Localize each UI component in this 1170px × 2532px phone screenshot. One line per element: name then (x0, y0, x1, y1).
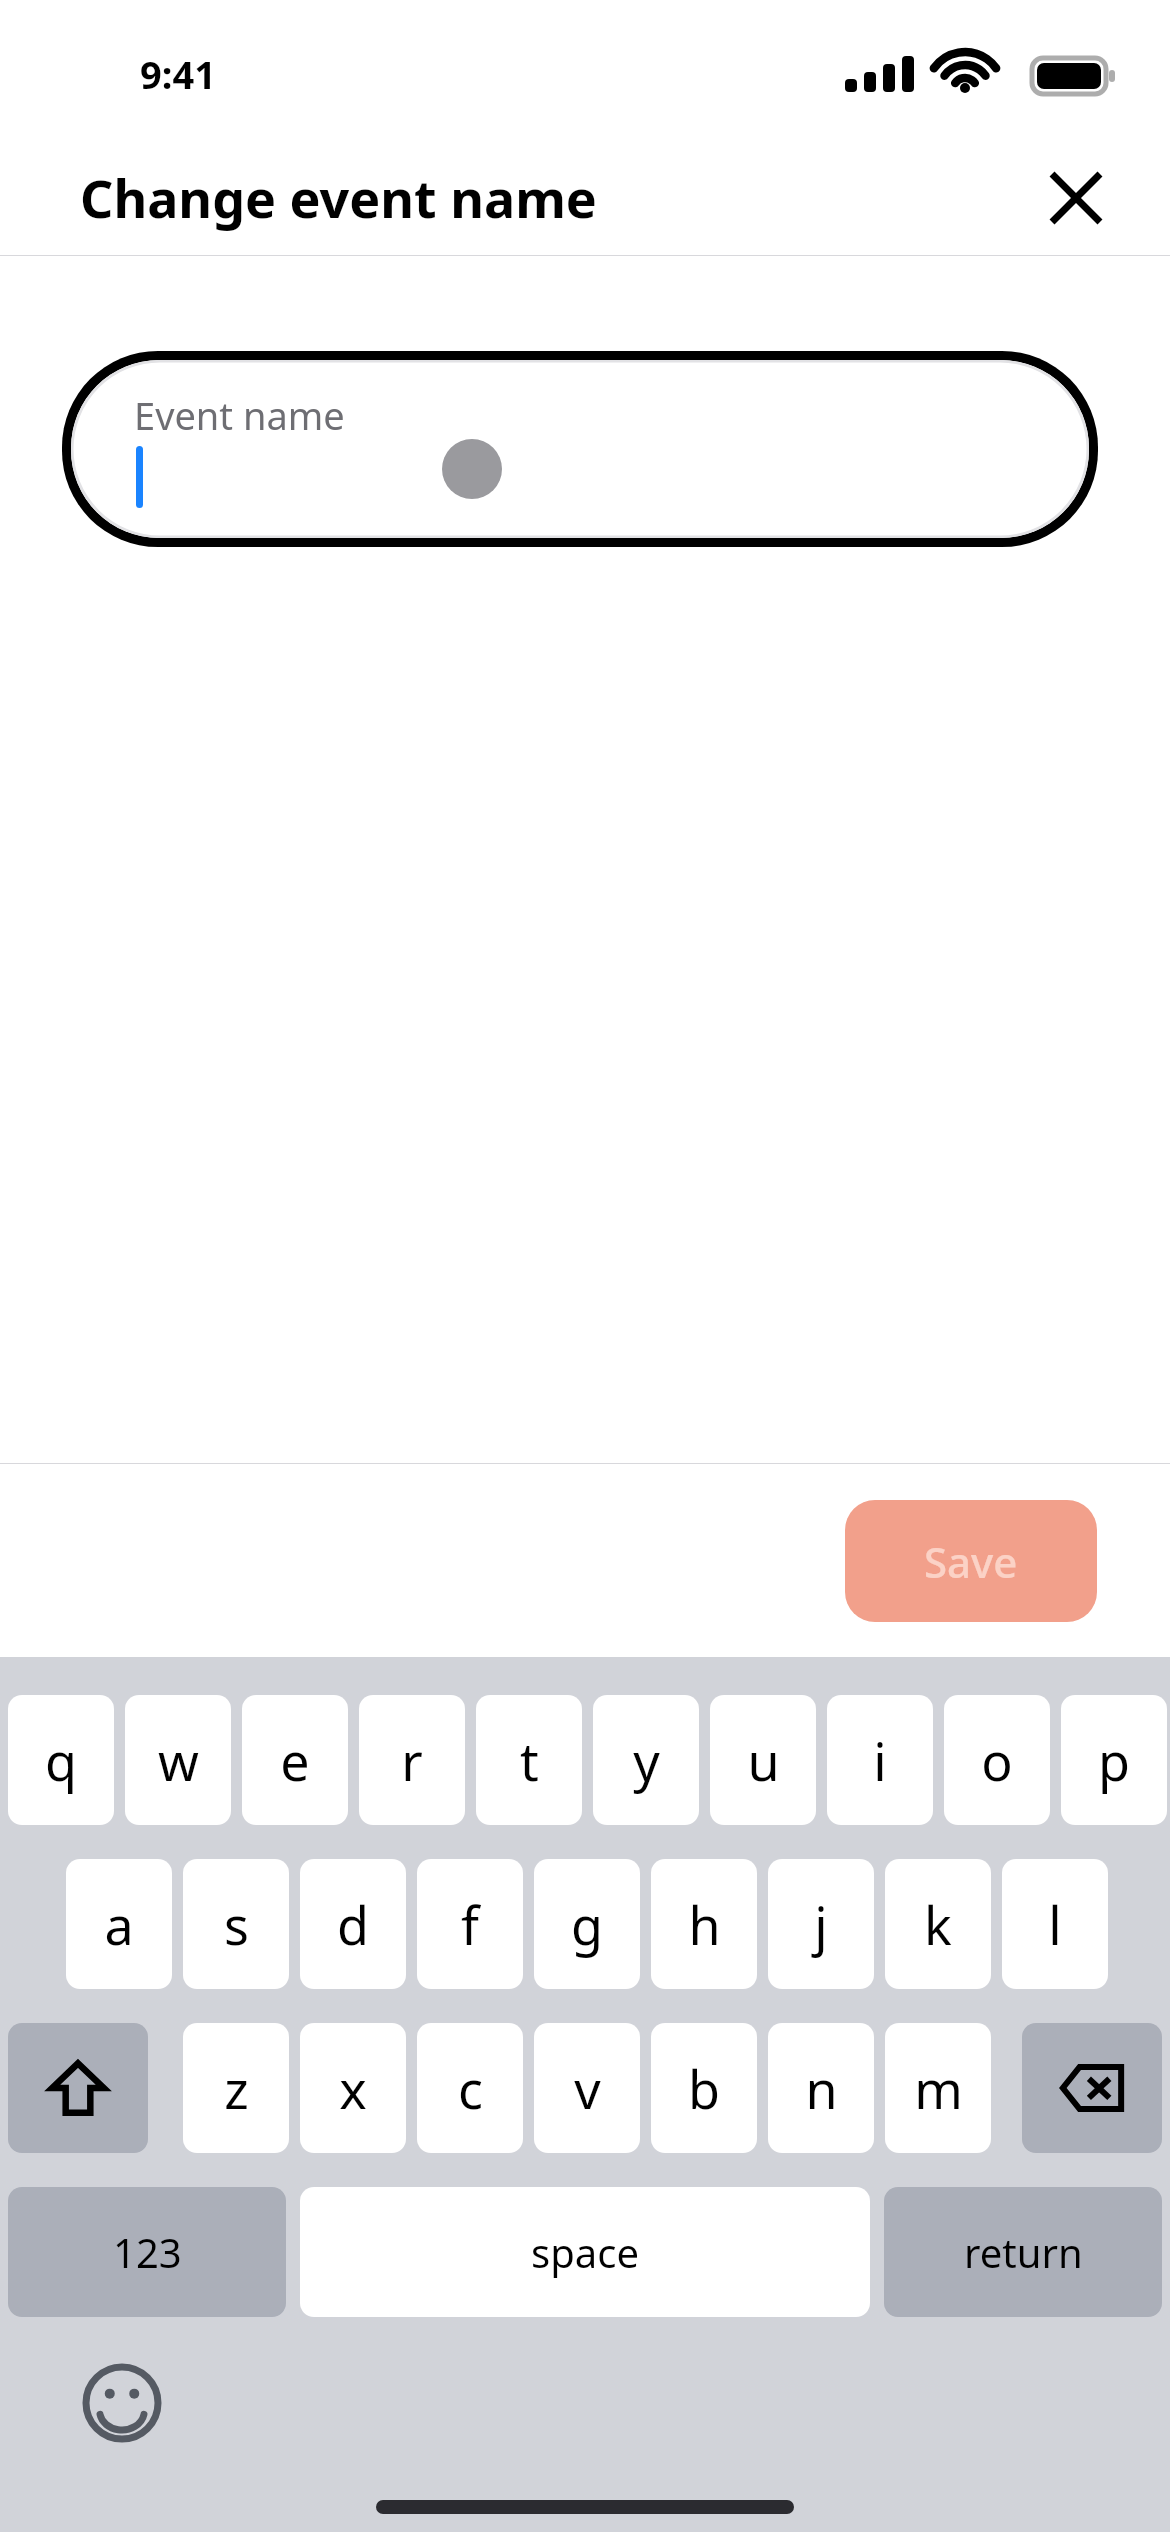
staticText: s (224, 1889, 249, 1960)
button[interactable]: Event name (62, 351, 1098, 547)
staticText: q (45, 1725, 77, 1796)
button[interactable]: d (300, 1859, 406, 1989)
button[interactable]: return (884, 2187, 1162, 2317)
staticText: i (873, 1725, 887, 1796)
button[interactable]: 123 (8, 2187, 286, 2317)
button[interactable]: z (183, 2023, 289, 2153)
button[interactable]: a (66, 1859, 172, 1989)
staticText: z (224, 2053, 249, 2124)
button[interactable]: u (710, 1695, 816, 1825)
staticText: e (280, 1725, 310, 1796)
button[interactable]: h (651, 1859, 757, 1989)
button[interactable]: Close (1037, 159, 1115, 237)
staticText: o (981, 1725, 1013, 1796)
button[interactable]: k (885, 1859, 991, 1989)
staticText: x (339, 2053, 367, 2124)
staticText: g (571, 1889, 603, 1960)
button[interactable]: o (944, 1695, 1050, 1825)
staticText: u (747, 1725, 780, 1796)
button[interactable]: g (534, 1859, 640, 1989)
staticText: r (401, 1725, 423, 1796)
button[interactable]: m (885, 2023, 991, 2153)
button[interactable]: r (359, 1695, 465, 1825)
staticText: v (574, 2053, 601, 2124)
staticText: Save (924, 1533, 1018, 1590)
button[interactable]: w (125, 1695, 231, 1825)
button[interactable]: Save (845, 1500, 1097, 1622)
staticText: b (688, 2053, 720, 2124)
button[interactable] (1022, 2023, 1162, 2153)
staticText: f (461, 1889, 479, 1960)
staticText: a (104, 1889, 134, 1960)
staticText: c (458, 2053, 483, 2124)
button[interactable]: c (417, 2023, 523, 2153)
button[interactable]: f (417, 1859, 523, 1989)
staticText: space (531, 2225, 639, 2279)
button[interactable]: v (534, 2023, 640, 2153)
button[interactable] (8, 2023, 148, 2153)
staticText: k (924, 1889, 952, 1960)
staticText: h (688, 1889, 721, 1960)
staticText: l (1048, 1889, 1062, 1960)
staticText: return (964, 2225, 1083, 2279)
button[interactable]: y (593, 1695, 699, 1825)
staticText: 123 (113, 2225, 182, 2279)
staticText: w (158, 1725, 199, 1796)
staticText: 9:41 (140, 48, 216, 100)
button[interactable]: Emoji (78, 2359, 166, 2447)
button[interactable]: i (827, 1695, 933, 1825)
staticText: j (814, 1889, 828, 1960)
staticText: p (1098, 1725, 1130, 1796)
button[interactable]: l (1002, 1859, 1108, 1989)
button[interactable]: n (768, 2023, 874, 2153)
staticText: m (914, 2053, 963, 2124)
button[interactable]: p (1061, 1695, 1167, 1825)
staticText: t (520, 1725, 539, 1796)
staticText: n (805, 2053, 838, 2124)
staticText: Change event name (80, 162, 597, 233)
staticText: Event name (134, 389, 345, 441)
button[interactable]: e (242, 1695, 348, 1825)
button[interactable]: t (476, 1695, 582, 1825)
button[interactable]: s (183, 1859, 289, 1989)
button[interactable]: b (651, 2023, 757, 2153)
staticText: y (633, 1725, 660, 1796)
button[interactable]: j (768, 1859, 874, 1989)
button[interactable]: space (300, 2187, 870, 2317)
staticText: d (337, 1889, 369, 1960)
button[interactable]: q (8, 1695, 114, 1825)
button[interactable]: x (300, 2023, 406, 2153)
